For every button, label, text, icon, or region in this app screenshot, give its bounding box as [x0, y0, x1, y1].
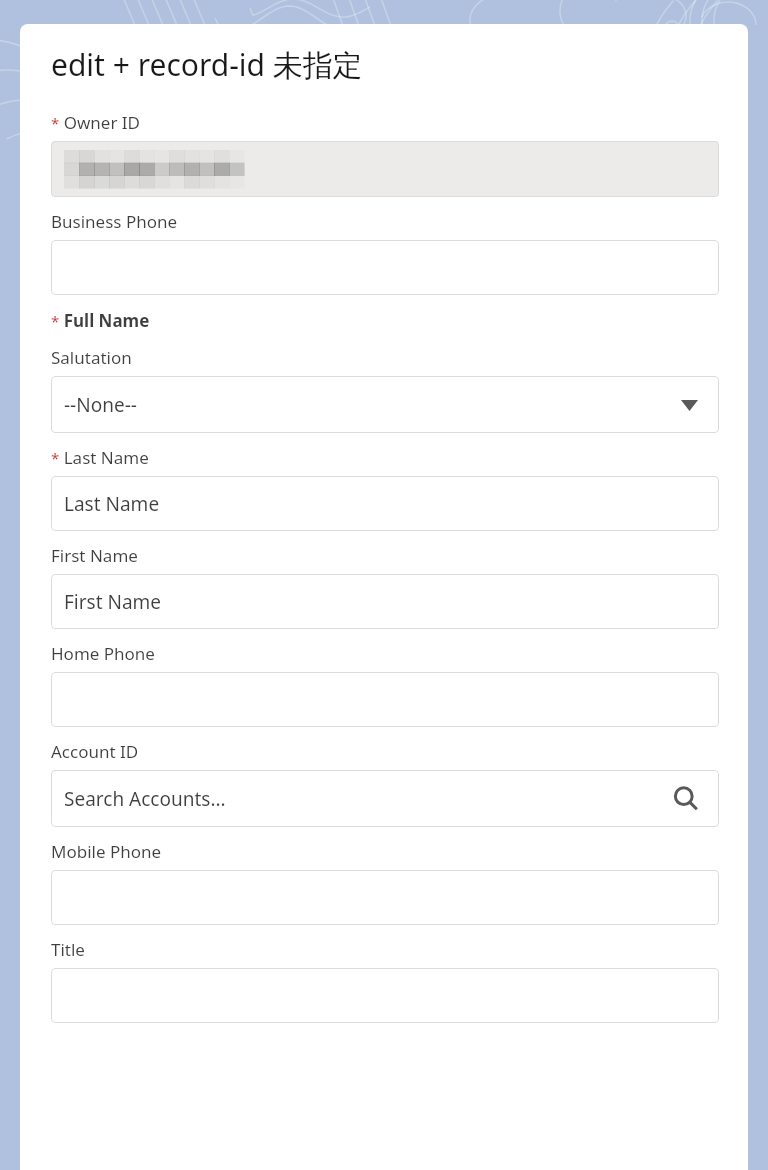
button[interactable]: [51, 968, 719, 1023]
staticText: Home Phone: [51, 642, 155, 665]
staticText: Account ID: [51, 740, 139, 763]
button[interactable]: [51, 240, 719, 295]
staticText: Search Accounts...: [64, 786, 226, 812]
staticText: edit + record-id 未指定: [51, 44, 363, 85]
staticText: --None--: [64, 392, 137, 418]
staticText: Salutation: [51, 346, 132, 369]
button[interactable]: Search Accounts...: [51, 770, 719, 827]
button[interactable]: [51, 141, 719, 197]
button[interactable]: --None--: [51, 376, 719, 433]
staticText: Title: [51, 938, 85, 961]
button[interactable]: Search Accounts: [666, 779, 706, 819]
staticText: Last Name: [64, 491, 160, 517]
staticText: Mobile Phone: [51, 840, 162, 863]
staticText: Business Phone: [51, 210, 178, 233]
staticText: * Owner ID: [51, 111, 141, 134]
staticText: * Full Name: [51, 309, 150, 332]
staticText: * Last Name: [51, 446, 149, 469]
button[interactable]: Last Name: [51, 476, 719, 531]
staticText: First Name: [51, 544, 138, 567]
staticText: First Name: [64, 589, 162, 615]
button[interactable]: [51, 672, 719, 727]
button[interactable]: First Name: [51, 574, 719, 629]
button[interactable]: Open picklist: [672, 388, 706, 422]
button[interactable]: [51, 870, 719, 925]
